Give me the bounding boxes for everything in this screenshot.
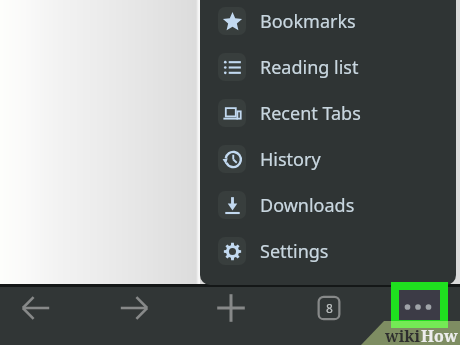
staticText: Recent Tabs [260, 101, 361, 126]
button[interactable]: Forward [112, 286, 156, 330]
button[interactable]: Back [14, 286, 58, 330]
button[interactable]: History [200, 136, 456, 182]
button[interactable]: More options [396, 285, 440, 329]
button[interactable]: Reading list [200, 44, 456, 90]
staticText: History [260, 147, 321, 172]
button[interactable]: Downloads [200, 182, 456, 228]
staticText: wiki [385, 325, 421, 345]
staticText: How [421, 325, 458, 345]
staticText: Reading list [260, 55, 359, 80]
button[interactable]: New tab [209, 286, 253, 330]
button[interactable]: Bookmarks [200, 0, 456, 44]
button[interactable]: Recent Tabs [200, 90, 456, 136]
staticText: Settings [260, 239, 329, 264]
button[interactable]: Settings [200, 228, 456, 274]
staticText: Bookmarks [260, 9, 356, 34]
staticText: Downloads [260, 193, 355, 218]
staticText: 8 [326, 300, 333, 316]
button[interactable]: Switch tabs [307, 286, 351, 330]
